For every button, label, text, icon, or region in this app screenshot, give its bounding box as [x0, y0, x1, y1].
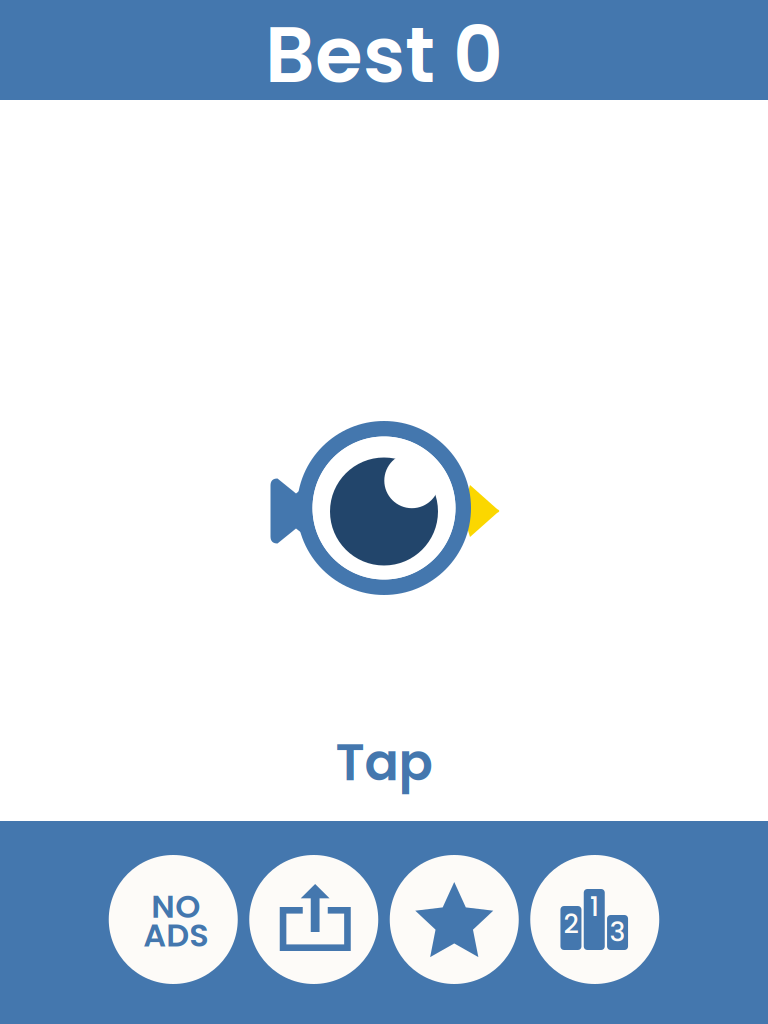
button[interactable]: No ads — [109, 855, 238, 984]
staticText: ADS — [143, 913, 208, 958]
button[interactable]: Rate — [390, 855, 519, 984]
staticText: Best 0 — [265, 1, 503, 109]
button[interactable]: Share — [249, 855, 378, 984]
staticText: NO — [151, 884, 200, 929]
staticText: 2 — [563, 905, 578, 942]
staticText: 3 — [610, 913, 626, 951]
staticText: Tap — [335, 727, 432, 798]
button[interactable]: Leaderboard — [530, 855, 659, 984]
staticText: 1 — [590, 888, 599, 925]
